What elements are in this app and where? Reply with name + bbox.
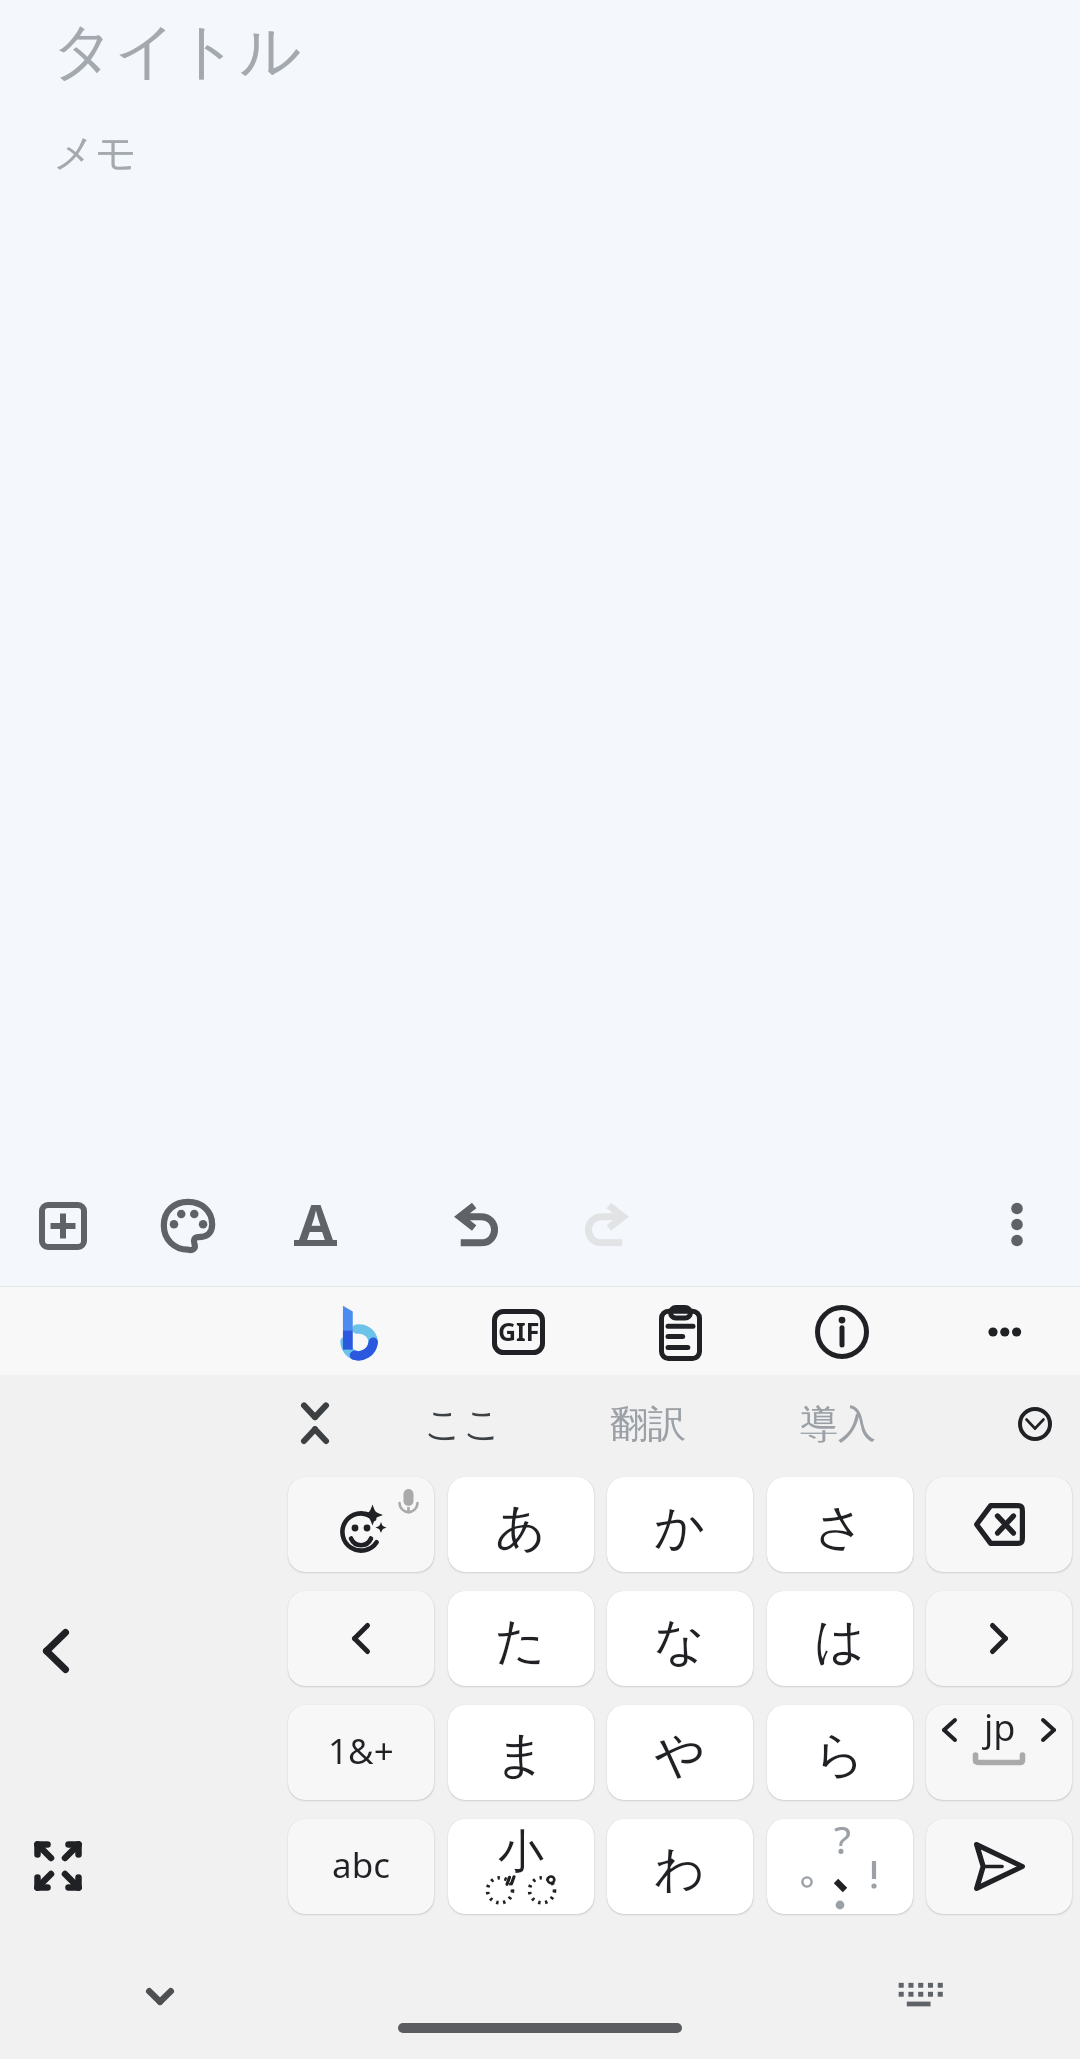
staticText: メモ [53, 128, 137, 180]
button[interactable]: わ [607, 1819, 753, 1914]
staticText: た [495, 1610, 547, 1673]
button[interactable]: abc [288, 1819, 434, 1914]
staticText: GIF [498, 1314, 540, 1348]
staticText: ? [834, 1819, 851, 1865]
button[interactable]: な [607, 1591, 753, 1686]
staticText: は [814, 1610, 866, 1673]
button[interactable]: Collapse suggestions [301, 1402, 329, 1444]
staticText: ら [814, 1724, 866, 1787]
button[interactable]: Next candidate [926, 1591, 1072, 1686]
button[interactable]: Redo [581, 1201, 629, 1246]
staticText: A [299, 1188, 333, 1246]
button[interactable]: Backspace [926, 1477, 1072, 1572]
staticText: ま [495, 1724, 547, 1787]
button[interactable]: ま [448, 1705, 594, 1800]
button[interactable]: GIF [492, 1309, 545, 1355]
staticText: あ [495, 1496, 547, 1559]
staticText: 導入 [800, 1400, 876, 1448]
button[interactable]: Punctuation [767, 1819, 913, 1914]
button[interactable]: Move cursor left [43, 1629, 69, 1673]
button[interactable]: 導入 [780, 1396, 895, 1452]
button[interactable]: Insert [39, 1202, 87, 1250]
button[interactable]: Expand suggestions [1018, 1407, 1052, 1441]
staticText: な [654, 1610, 706, 1673]
button[interactable]: Clipboard [659, 1305, 702, 1359]
button[interactable]: 翻訳 [590, 1396, 705, 1452]
button[interactable]: さ [767, 1477, 913, 1572]
button[interactable]: Bing search [338, 1304, 379, 1361]
staticText: abc [332, 1841, 390, 1889]
button[interactable]: Previous candidate [288, 1591, 434, 1686]
staticText: タイトル [52, 13, 302, 90]
button[interactable]: た [448, 1591, 594, 1686]
button[interactable]: Switch keyboard [898, 1982, 942, 2010]
staticText: わ [654, 1838, 706, 1901]
staticText: 1&+ [328, 1727, 394, 1775]
staticText: jp [984, 1705, 1016, 1752]
staticText: か [654, 1496, 706, 1559]
button[interactable]: 1&+ [288, 1705, 434, 1800]
button[interactable]: Text formatting [293, 1188, 338, 1246]
button[interactable]: ら [767, 1705, 913, 1800]
button[interactable]: Hide keyboard [146, 1988, 174, 2005]
button[interactable]: Send [926, 1819, 1072, 1914]
staticText: さ [814, 1496, 866, 1559]
button[interactable]: Information [815, 1305, 869, 1359]
button[interactable]: ここ [405, 1396, 520, 1452]
button[interactable]: Small kana and dakuten [448, 1819, 594, 1914]
button[interactable]: Undo [454, 1201, 502, 1246]
button[interactable]: あ [448, 1477, 594, 1572]
staticText: 小 [498, 1823, 544, 1881]
button[interactable]: Space, language jp [926, 1705, 1072, 1800]
button[interactable]: More keyboard options [978, 1310, 1022, 1354]
button[interactable]: More options [993, 1194, 1041, 1242]
button[interactable]: Emoji and voice input [288, 1477, 434, 1572]
button[interactable]: は [767, 1591, 913, 1686]
staticText: 翻訳 [610, 1400, 686, 1448]
button[interactable]: や [607, 1705, 753, 1800]
button[interactable]: Colour palette [162, 1200, 214, 1252]
staticText: ここ [424, 1400, 502, 1448]
button[interactable]: か [607, 1477, 753, 1572]
staticText: や [654, 1724, 706, 1787]
button[interactable]: Resize keyboard [33, 1841, 83, 1891]
